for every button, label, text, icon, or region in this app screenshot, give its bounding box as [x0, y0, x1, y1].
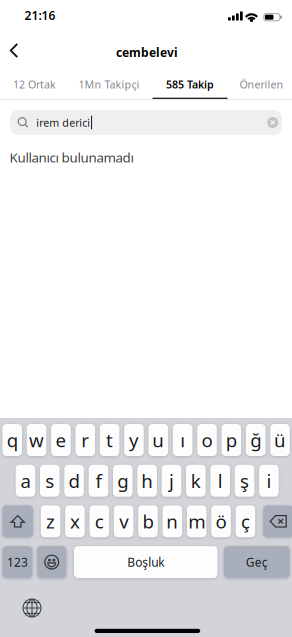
staticText: Geç: [246, 554, 268, 570]
button[interactable]: o: [197, 424, 217, 456]
staticText: x: [70, 509, 80, 534]
button[interactable]: 1Mn Takipçi: [69, 79, 149, 99]
button[interactable]: Clear text: [267, 117, 278, 128]
staticText: o: [201, 428, 212, 452]
button[interactable]: x: [65, 505, 85, 537]
staticText: i: [266, 468, 271, 493]
staticText: u: [152, 428, 164, 452]
button[interactable]: Next keyboard: [22, 598, 41, 617]
button[interactable]: n: [163, 505, 182, 537]
staticText: g: [117, 468, 128, 493]
button[interactable]: z: [41, 505, 60, 537]
button[interactable]: u: [148, 424, 168, 456]
button[interactable]: h: [137, 465, 157, 497]
staticText: w: [29, 428, 44, 452]
button[interactable]: 123: [2, 546, 32, 578]
button[interactable]: d: [64, 465, 84, 497]
staticText: a: [20, 468, 30, 493]
staticText: Kullanıcı bulunamadı: [9, 148, 133, 166]
button[interactable]: ç: [236, 505, 255, 537]
staticText: f: [95, 468, 101, 493]
staticText: 585 Takip: [166, 77, 214, 91]
staticText: irem derici: [36, 115, 90, 130]
staticText: z: [46, 509, 55, 534]
button[interactable]: Önerilen: [231, 79, 292, 99]
button[interactable]: r: [75, 424, 95, 456]
button[interactable]: Boşluk: [74, 546, 217, 578]
staticText: Önerilen: [239, 77, 283, 91]
button[interactable]: s: [40, 465, 60, 497]
staticText: t: [106, 428, 113, 452]
staticText: ğ: [250, 428, 261, 452]
button[interactable]: c: [89, 505, 109, 537]
button[interactable]: a: [16, 465, 35, 497]
button[interactable]: g: [113, 465, 133, 497]
button[interactable]: j: [162, 465, 181, 497]
staticText: ç: [241, 509, 250, 534]
button[interactable]: Delete: [263, 505, 292, 537]
staticText: k: [191, 468, 201, 493]
staticText: cembelevi: [116, 44, 178, 60]
staticText: j: [169, 468, 174, 493]
button[interactable]: Shift: [2, 505, 33, 537]
button[interactable]: f: [89, 465, 108, 497]
button[interactable]: 12 Ortak: [0, 79, 69, 99]
staticText: r: [81, 428, 89, 452]
staticText: v: [119, 509, 128, 534]
button[interactable]: k: [186, 465, 206, 497]
staticText: 123: [7, 554, 28, 570]
button[interactable]: ö: [211, 505, 231, 537]
button[interactable]: Geç: [224, 546, 290, 578]
button[interactable]: ğ: [246, 424, 265, 456]
staticText: ö: [216, 509, 227, 534]
staticText: l: [218, 468, 223, 493]
button[interactable]: e: [51, 424, 71, 456]
staticText: ı: [180, 428, 185, 452]
staticText: p: [226, 428, 237, 452]
button[interactable]: m: [187, 505, 206, 537]
button[interactable]: 585 Takip: [149, 79, 231, 99]
staticText: n: [166, 509, 178, 534]
staticText: 12 Ortak: [13, 77, 56, 91]
staticText: m: [188, 509, 205, 534]
button[interactable]: y: [124, 424, 144, 456]
button[interactable]: l: [210, 465, 230, 497]
button[interactable]: ü: [270, 424, 290, 456]
button[interactable]: ş: [235, 465, 254, 497]
staticText: d: [69, 468, 80, 493]
staticText: b: [142, 509, 153, 534]
button[interactable]: Emoji: [37, 546, 66, 578]
button[interactable]: ı: [173, 424, 192, 456]
staticText: h: [141, 468, 153, 493]
staticText: ü: [274, 428, 286, 452]
button[interactable]: p: [221, 424, 241, 456]
staticText: 1Mn Takipçi: [78, 77, 139, 91]
staticText: q: [7, 428, 18, 452]
staticText: y: [129, 428, 139, 452]
button[interactable]: b: [138, 505, 158, 537]
button[interactable]: i: [259, 465, 279, 497]
button[interactable]: q: [2, 424, 22, 456]
staticText: 21:16: [24, 7, 55, 23]
staticText: Boşluk: [127, 554, 164, 570]
staticText: e: [55, 428, 66, 452]
staticText: ş: [240, 468, 249, 493]
button[interactable]: Back: [0, 35, 29, 65]
button[interactable]: t: [100, 424, 119, 456]
button[interactable]: v: [114, 505, 133, 537]
button[interactable]: w: [27, 424, 46, 456]
staticText: s: [45, 468, 54, 493]
staticText: c: [95, 509, 104, 534]
